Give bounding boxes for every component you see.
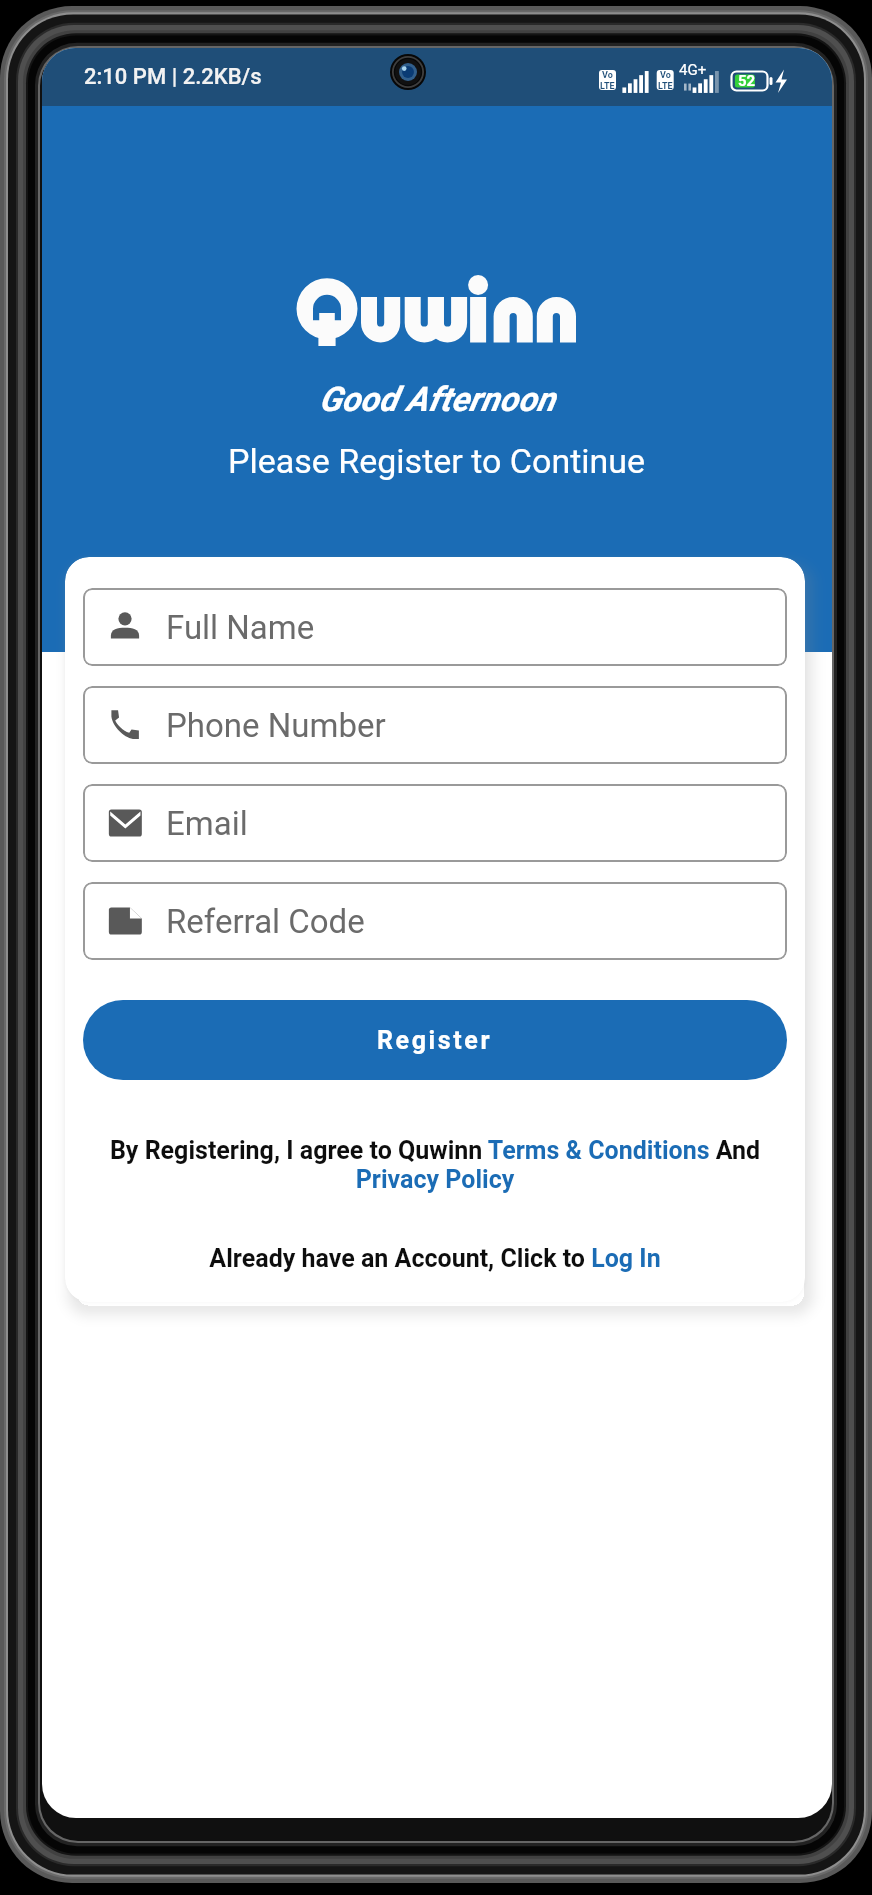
staticText: 2:10 PM | 2.2KB/s [84, 64, 262, 90]
staticText: Email [166, 804, 248, 843]
other: Camera [390, 54, 426, 90]
button[interactable]: Referral Code [83, 882, 787, 960]
staticText: Referral Code [166, 902, 365, 941]
staticText: Please Register to Continue [228, 441, 646, 481]
staticText: Register [377, 1026, 493, 1055]
staticText: LTE [600, 81, 615, 92]
staticText: 4G+ [679, 61, 707, 79]
staticText: Good Afternoon [319, 379, 556, 419]
button[interactable]: Already have an Account, Click to Log In [65, 1244, 805, 1273]
button[interactable]: Full Name [83, 588, 787, 666]
button[interactable]: By Registering, I agree to Quwinn Terms … [65, 1136, 805, 1194]
staticText: LTE [658, 81, 673, 92]
staticText: Vo [602, 70, 613, 81]
button[interactable]: Register [83, 1000, 787, 1080]
staticText: Full Name [166, 608, 315, 647]
staticText: 52 [738, 72, 756, 90]
button[interactable]: Phone Number [83, 686, 787, 764]
staticText: Vo [660, 70, 671, 81]
staticText: Phone Number [166, 706, 386, 745]
button[interactable]: Email [83, 784, 787, 862]
